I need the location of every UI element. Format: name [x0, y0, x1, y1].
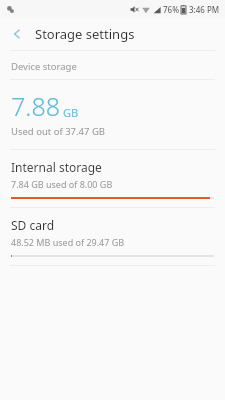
- staticText: Storage settings: [35, 25, 135, 43]
- button[interactable]: Internal storage: [0, 150, 225, 207]
- staticText: SD card: [11, 217, 55, 233]
- button[interactable]: Back: [5, 22, 29, 46]
- staticText: 76%: [163, 4, 179, 15]
- staticText: 7.84 GB used of 8.00 GB: [11, 178, 113, 190]
- staticText: Internal storage: [11, 159, 102, 175]
- staticText: Used out of 37.47 GB: [11, 125, 106, 138]
- staticText: 48.52 MB used of 29.47 GB: [11, 236, 125, 248]
- staticText: GB: [63, 105, 79, 120]
- staticText: Device storage: [11, 60, 77, 73]
- button[interactable]: 7.88: [0, 80, 225, 149]
- staticText: 7.88: [11, 89, 60, 123]
- staticText: 3:46 PM: [189, 4, 220, 15]
- button[interactable]: SD card: [0, 208, 225, 265]
